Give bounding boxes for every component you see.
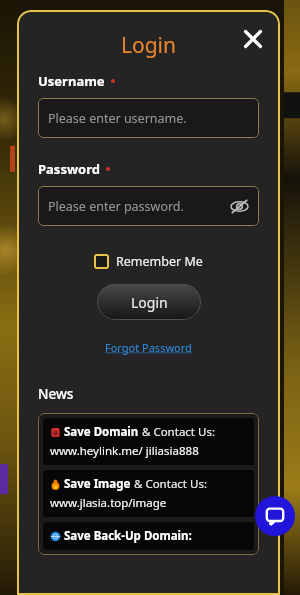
staticText: Login <box>121 31 177 60</box>
staticText: News <box>38 385 74 403</box>
staticText: Save Image <box>64 476 131 492</box>
staticText: Forgot Password <box>105 340 192 355</box>
button[interactable]: Please enter username. <box>38 98 259 138</box>
button[interactable]: Open chat support <box>255 496 295 536</box>
button[interactable]: Remember Me <box>94 251 203 272</box>
staticText: Save Back-Up Domain: <box>64 528 192 544</box>
button[interactable]: Close <box>236 22 270 56</box>
staticText: Password <box>38 160 100 178</box>
button[interactable]: Login <box>97 284 201 320</box>
staticText: Remember Me <box>116 253 203 270</box>
staticText: Please enter username. <box>48 110 187 127</box>
staticText: Save Domain <box>64 424 139 440</box>
staticText: & Contact Us: <box>139 424 215 440</box>
staticText: Please enter password. <box>48 198 184 215</box>
button[interactable]: Forgot Password <box>105 340 192 355</box>
staticText: Login <box>131 293 168 312</box>
button[interactable]: Save Domain <box>43 418 254 465</box>
staticText: Username <box>38 72 105 90</box>
button[interactable]: Save Image <box>43 470 254 517</box>
staticText: www.heylink.me/ jiliasia888 <box>50 443 199 459</box>
button[interactable]: Please enter password. <box>38 186 259 226</box>
button[interactable]: Save Back-Up Domain: <box>43 522 254 550</box>
staticText: & Contact Us: <box>131 476 207 492</box>
staticText: www.jlasia.top/image <box>50 495 167 511</box>
button[interactable]: Show password <box>225 192 253 220</box>
